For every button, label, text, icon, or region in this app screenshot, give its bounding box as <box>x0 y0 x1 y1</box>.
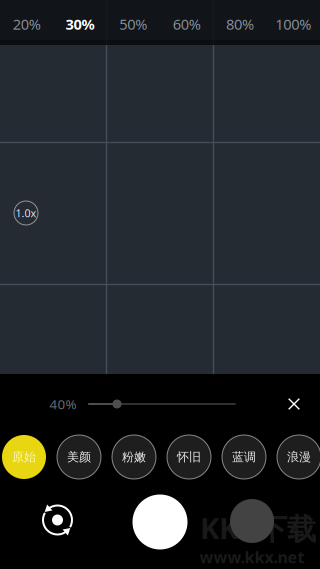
button[interactable]: 100% <box>267 4 320 44</box>
staticText: 蓝调 <box>232 450 256 464</box>
button[interactable]: 30% <box>53 4 107 44</box>
button[interactable]: 80% <box>213 4 267 44</box>
staticText: 1.0x <box>15 206 36 220</box>
staticText: 20% <box>13 14 41 34</box>
staticText: 100% <box>275 14 311 34</box>
staticText: KKX下载 <box>200 508 316 548</box>
button[interactable]: Close <box>279 389 309 419</box>
button[interactable]: 蓝调 <box>222 435 266 479</box>
button[interactable]: 50% <box>107 4 160 44</box>
staticText: 60% <box>173 14 201 34</box>
button[interactable]: 1.0x <box>14 201 38 225</box>
button[interactable]: Switch camera <box>40 502 75 537</box>
button[interactable]: 原始 <box>2 435 46 479</box>
staticText: 浪漫 <box>287 450 311 464</box>
button[interactable]: 怀旧 <box>167 435 211 479</box>
button[interactable]: Photo library <box>230 499 274 543</box>
staticText: 40% <box>49 395 76 413</box>
button[interactable]: 浪漫 <box>277 435 320 479</box>
staticText: www.kkx.net <box>199 546 304 568</box>
button[interactable]: 20% <box>0 4 53 44</box>
button[interactable]: 美颜 <box>57 435 101 479</box>
staticText: 80% <box>226 14 254 34</box>
staticText: 原始 <box>12 450 36 464</box>
button[interactable]: 粉嫩 <box>112 435 156 479</box>
staticText: 美颜 <box>67 450 91 464</box>
staticText: 30% <box>65 14 94 34</box>
button[interactable]: Take photo <box>132 494 187 549</box>
button[interactable]: 60% <box>160 4 213 44</box>
staticText: 怀旧 <box>177 450 201 464</box>
staticText: 50% <box>119 14 147 34</box>
staticText: 粉嫩 <box>122 450 146 464</box>
